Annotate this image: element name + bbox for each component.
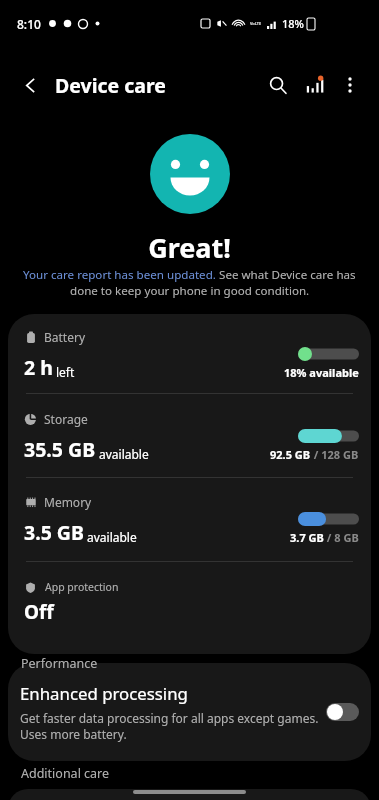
button[interactable]: Enhanced processing toggle (326, 703, 359, 721)
button[interactable]: Search (260, 64, 296, 106)
button[interactable]: Back (9, 64, 51, 106)
staticText: 18% (282, 16, 304, 31)
staticText: Great! (0, 229, 379, 266)
staticText: 18% available (284, 365, 359, 380)
staticText: Performance (21, 655, 98, 672)
staticText: 3.5 GB (24, 519, 84, 546)
staticText: 8:10 (17, 16, 41, 32)
staticText: / 8 GB (324, 530, 359, 545)
staticText: See what Device care has (216, 267, 356, 283)
staticText: available (87, 529, 137, 545)
staticText: App protection (45, 580, 119, 594)
staticText: Memory (44, 494, 92, 510)
staticText: Uses more battery. (20, 726, 127, 742)
staticText: Your care report has been updated. (23, 267, 216, 283)
button[interactable]: Enhanced processing (8, 663, 371, 761)
staticText: Get faster data processing for all apps … (20, 710, 319, 726)
button[interactable]: More options (332, 64, 368, 106)
button[interactable]: Storage (8, 394, 371, 477)
staticText: 35.5 GB (24, 436, 96, 463)
button[interactable]: App protection (8, 562, 371, 654)
staticText: 92.5 GB (270, 447, 311, 462)
staticText: Battery (44, 329, 86, 345)
staticText: Device care (55, 72, 166, 99)
staticText: done to keep your phone in good conditio… (70, 283, 310, 299)
staticText: 3.7 GB (290, 530, 324, 545)
staticText: left (56, 364, 75, 380)
staticText: Storage (44, 411, 88, 427)
button[interactable]: Memory (8, 478, 371, 561)
staticText: Enhanced processing (20, 682, 188, 705)
staticText: VoLTE (250, 21, 262, 26)
staticText: 2 h (24, 354, 53, 381)
staticText: Additional care (21, 765, 110, 782)
staticText: / 128 GB (311, 447, 359, 462)
button[interactable]: Battery (8, 314, 371, 393)
button[interactable]: Usage statistics (296, 64, 332, 106)
staticText: available (99, 446, 149, 462)
staticText: Off (24, 599, 54, 625)
